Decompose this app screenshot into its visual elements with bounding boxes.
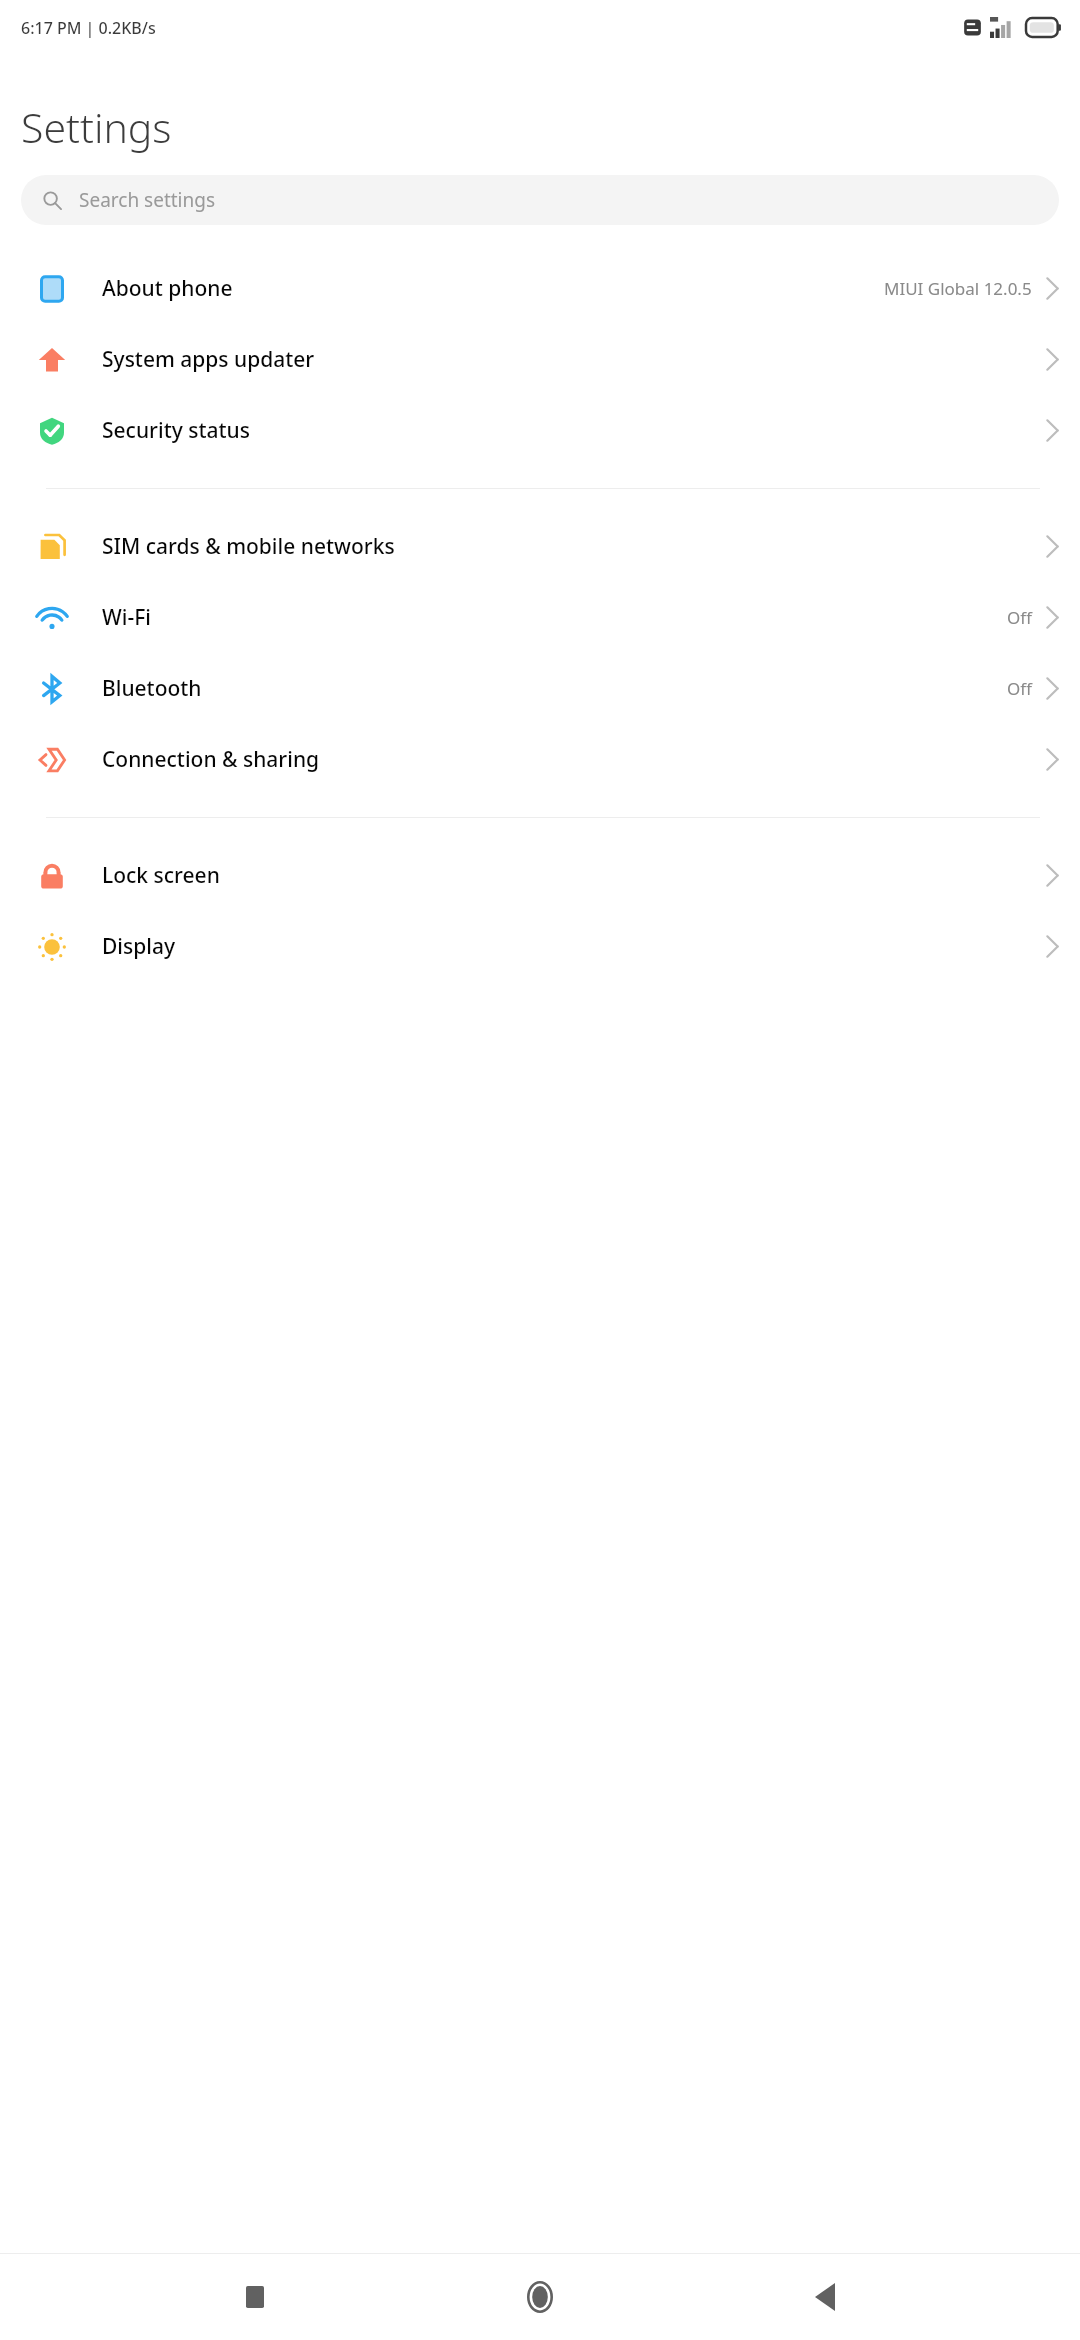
button[interactable]: Display	[0, 911, 1080, 982]
button[interactable]: Lock screen	[0, 840, 1080, 911]
staticText: MIUI Global 12.0.5	[884, 277, 1032, 300]
staticText: About phone	[102, 274, 233, 303]
button[interactable]: Security status	[0, 395, 1080, 466]
button[interactable]: Recent apps	[225, 2267, 285, 2327]
button[interactable]: SIM cards & mobile networks	[0, 511, 1080, 582]
button[interactable]: Back	[795, 2267, 855, 2327]
button[interactable]: System apps updater	[0, 324, 1080, 395]
button[interactable]: Bluetooth	[0, 653, 1080, 724]
staticText: Off	[1007, 677, 1032, 700]
button[interactable]: Connection & sharing	[0, 724, 1080, 795]
staticText: Off	[1007, 606, 1032, 629]
staticText: Connection & sharing	[102, 745, 320, 774]
button[interactable]: Wi-Fi	[0, 582, 1080, 653]
staticText: Bluetooth	[102, 674, 202, 703]
staticText: Display	[102, 932, 176, 961]
button[interactable]: Home	[510, 2267, 570, 2327]
staticText: Search settings	[79, 187, 216, 213]
staticText: Security status	[102, 416, 250, 445]
staticText: 6:17 PM | 0.2KB/s	[21, 17, 156, 39]
staticText: System apps updater	[102, 345, 315, 374]
staticText: Lock screen	[102, 861, 220, 890]
button[interactable]: About phone	[0, 253, 1080, 324]
staticText: Wi-Fi	[102, 603, 151, 632]
staticText: Settings	[21, 99, 172, 155]
button[interactable]: Search settings	[21, 175, 1059, 225]
staticText: SIM cards & mobile networks	[102, 532, 395, 561]
